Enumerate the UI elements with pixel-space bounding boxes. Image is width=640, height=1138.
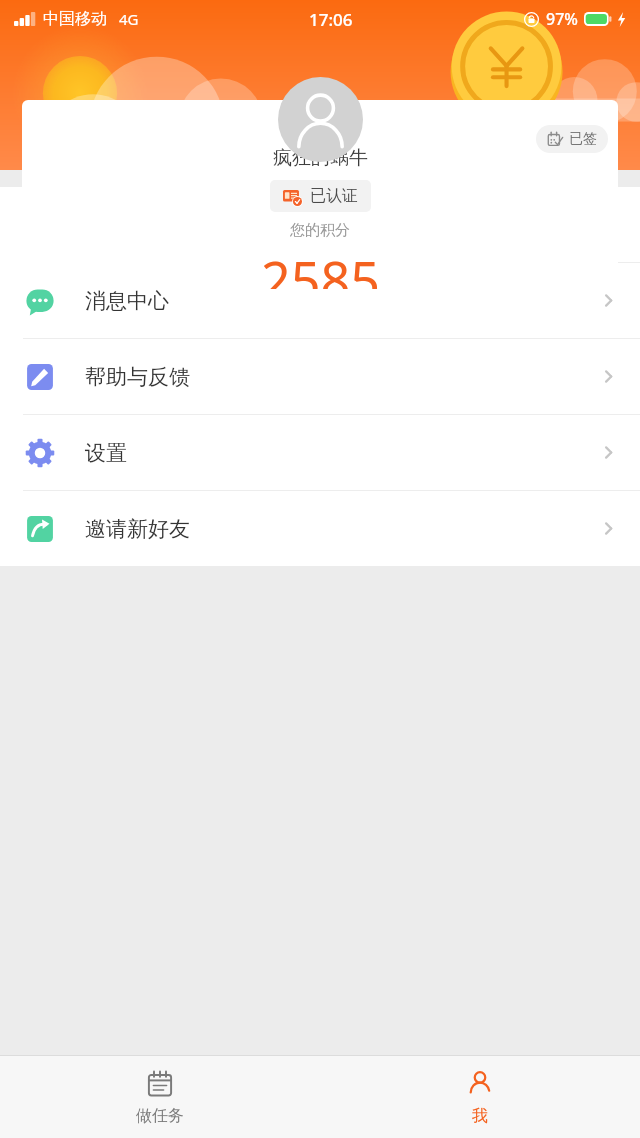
button[interactable]: 邀请新好友 — [0, 491, 640, 566]
staticText: 消息中心 — [85, 288, 169, 314]
button[interactable]: 设置 — [0, 415, 640, 490]
staticText: 我 — [472, 1106, 488, 1126]
staticText: 设置 — [85, 440, 127, 466]
button[interactable]: 帮助与反馈 — [0, 339, 640, 414]
staticText: 17:06 — [309, 8, 353, 31]
staticText: 做任务 — [136, 1106, 184, 1126]
button[interactable]: 做任务 — [0, 1063, 320, 1132]
staticText: 4G — [119, 9, 139, 29]
staticText: 您的积分 — [290, 221, 350, 240]
button[interactable]: 我 — [320, 1063, 640, 1132]
button[interactable]: 已认证 — [270, 180, 371, 212]
button[interactable]: Profile avatar — [278, 77, 363, 162]
staticText: 97% — [546, 8, 578, 30]
staticText: 2585 — [261, 244, 380, 289]
staticText: 疯狂的蜗牛 — [273, 146, 368, 170]
button[interactable]: 我的奖品 — [0, 187, 640, 262]
staticText: 中国移动 — [43, 9, 107, 29]
staticText: 邀请新好友 — [85, 516, 190, 542]
staticText: 已签 — [569, 130, 597, 148]
staticText: 已认证 — [310, 186, 358, 206]
button[interactable]: 消息中心 — [0, 263, 640, 338]
staticText: 帮助与反馈 — [85, 364, 190, 390]
button[interactable]: 已签 — [536, 125, 608, 153]
